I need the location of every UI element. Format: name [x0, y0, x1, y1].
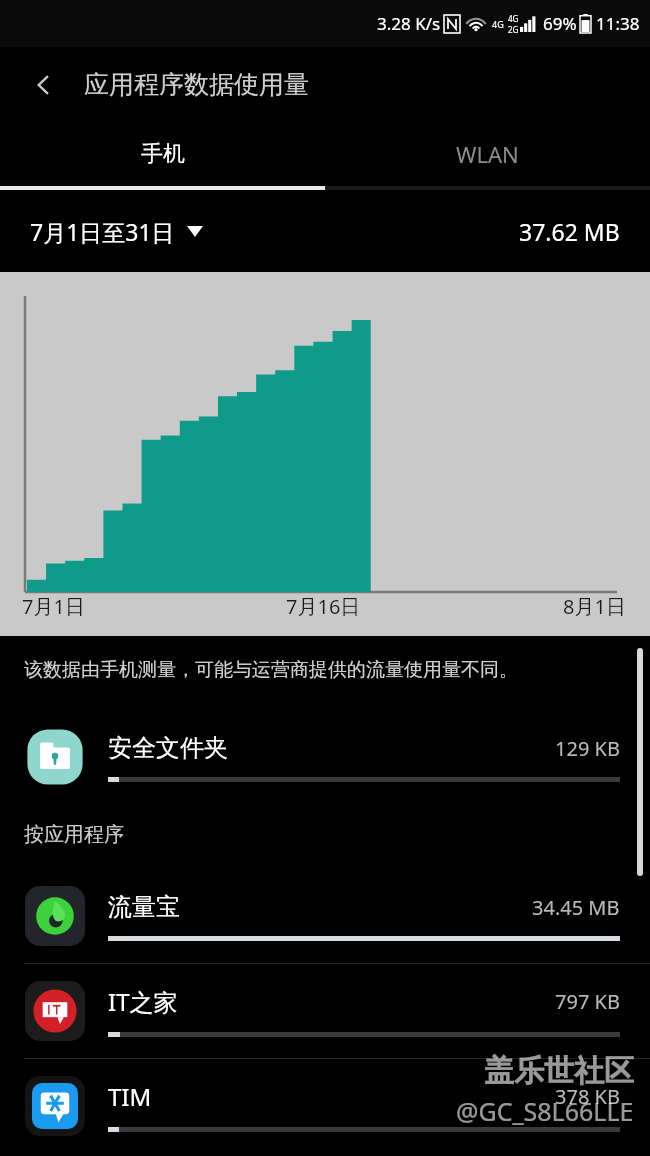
button[interactable]: TIM [0, 1059, 650, 1153]
button[interactable]: WLAN [325, 122, 650, 186]
staticText: 2G [508, 24, 519, 35]
staticText: 34.45 MB [532, 894, 620, 921]
staticText: 378 KB [555, 1083, 620, 1110]
staticText: 该数据由手机测量，可能与运营商提供的流量使用量不同。 [24, 658, 518, 682]
button[interactable]: 手机 [0, 122, 325, 186]
staticText: WLAN [456, 139, 519, 169]
staticText: 安全文件夹 [108, 733, 228, 763]
staticText: 手机 [141, 140, 185, 168]
button[interactable]: IT之家 [0, 964, 650, 1058]
staticText: 129 KB [555, 735, 620, 762]
staticText: IT之家 [108, 985, 178, 1018]
button[interactable]: Back [22, 63, 66, 107]
staticText: 7月16日 [286, 593, 361, 620]
staticText: 37.62 MB [519, 216, 620, 247]
staticText: 4G [508, 13, 519, 24]
staticText: @GC_S8L66LLE [456, 1094, 634, 1128]
staticText: 3.28 K/s [377, 12, 441, 35]
button[interactable]: 流量宝 [0, 869, 650, 963]
staticText: 7月1日至31日 [30, 216, 175, 247]
staticText: 应用程序数据使用量 [84, 69, 309, 100]
staticText: 11:38 [596, 12, 640, 35]
staticText: 流量宝 [108, 892, 180, 922]
staticText: 按应用程序 [24, 822, 124, 847]
staticText: 797 KB [555, 988, 620, 1015]
staticText: 盖乐世社区 [484, 1052, 634, 1090]
staticText: 8月1日 [563, 593, 626, 620]
staticText: TIM [108, 1080, 152, 1113]
staticText: 4G [492, 18, 504, 30]
staticText: 69% [543, 12, 577, 35]
staticText: 7月1日 [22, 593, 85, 620]
button[interactable]: 安全文件夹 [0, 710, 650, 804]
button[interactable]: 7月1日至31日 [30, 216, 203, 247]
